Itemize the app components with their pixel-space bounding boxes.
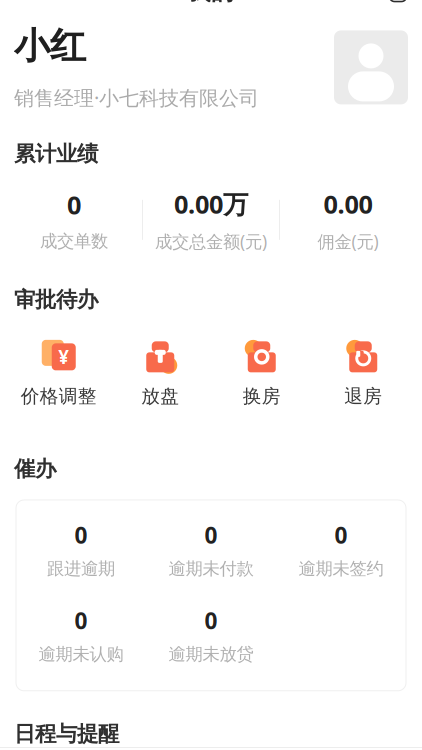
staticText: 逾期未认购: [38, 643, 123, 665]
button[interactable]: 放盘: [109, 335, 211, 412]
staticText: 成交总金额(元): [155, 230, 267, 253]
staticText: ¥: [58, 344, 69, 369]
staticText: 销售经理·小七科技有限公司: [14, 84, 259, 111]
staticText: 审批待办: [14, 287, 98, 313]
button[interactable]: 设置: [378, 0, 418, 12]
staticText: 逾期未放贷: [168, 643, 253, 665]
button[interactable]: 首页: [0, 745, 105, 750]
staticText: 跟进逾期: [47, 558, 115, 579]
staticText: 0.00: [323, 187, 372, 221]
staticText: 成交单数: [40, 230, 108, 252]
button[interactable]: 换房: [211, 335, 312, 412]
staticText: 逾期未签约: [298, 558, 383, 579]
button[interactable]: 房源: [211, 745, 316, 750]
staticText: 换房: [243, 385, 281, 408]
button[interactable]: 退房: [312, 335, 414, 412]
staticText: 逾期未付款: [168, 558, 253, 579]
staticText: 0: [67, 188, 81, 221]
staticText: 退房: [344, 385, 382, 408]
staticText: 0: [74, 520, 87, 550]
staticText: 0: [74, 605, 87, 635]
staticText: 累计业绩: [14, 141, 98, 167]
button[interactable]: 0: [16, 605, 146, 665]
staticText: 催办: [14, 456, 56, 482]
staticText: 0.00万: [174, 187, 248, 221]
button[interactable]: 0: [146, 605, 276, 665]
button[interactable]: 0: [276, 520, 406, 579]
staticText: 小红: [14, 24, 86, 68]
staticText: 0: [334, 520, 347, 550]
staticText: 佣金(元): [317, 230, 378, 253]
staticText: 价格调整: [21, 385, 97, 408]
button[interactable]: 客户: [105, 745, 211, 750]
staticText: 放盘: [141, 385, 179, 408]
button[interactable]: ¥: [8, 335, 109, 412]
button[interactable]: 0: [146, 520, 276, 579]
button[interactable]: 我的: [316, 745, 422, 750]
staticText: 日程与提醒: [14, 721, 119, 747]
button[interactable]: 0: [16, 520, 146, 579]
staticText: 我的: [188, 0, 234, 6]
staticText: 0: [204, 520, 217, 550]
staticText: 0: [204, 605, 217, 635]
